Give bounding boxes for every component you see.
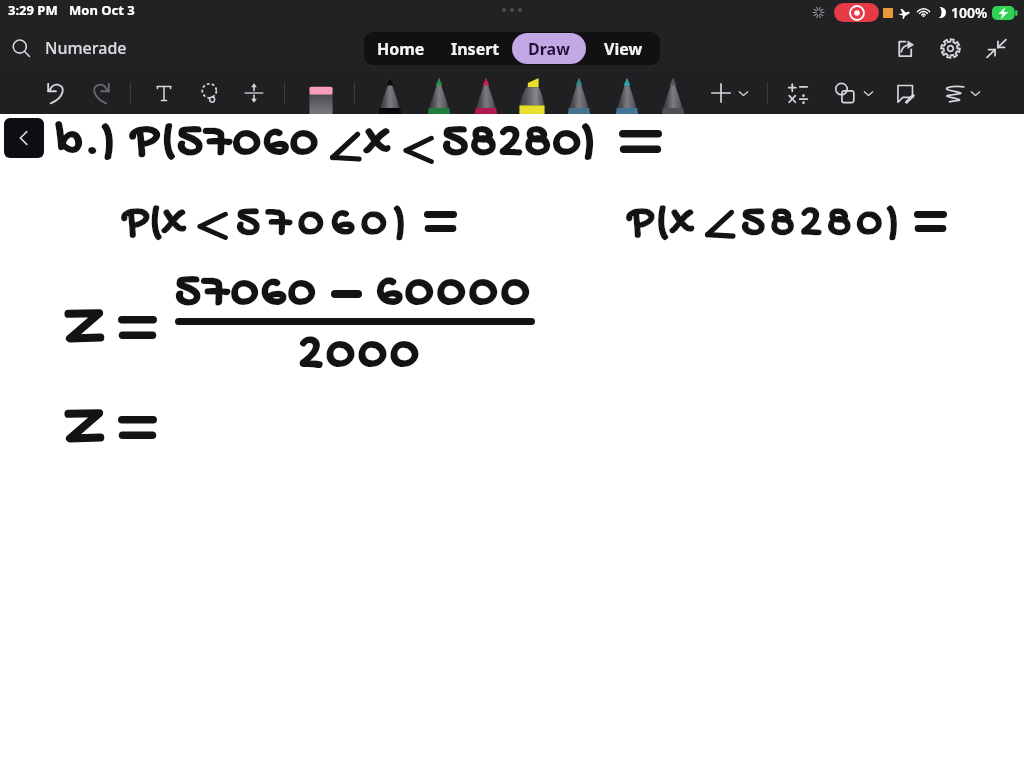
staticText: 100%	[951, 3, 988, 22]
button[interactable]: Pen	[607, 72, 647, 114]
staticText: 57060	[175, 265, 318, 323]
button[interactable]: Draw	[512, 33, 586, 64]
staticText: 58280)	[741, 198, 905, 252]
button[interactable]: More options	[857, 82, 879, 104]
button[interactable]: More options	[732, 82, 754, 104]
button[interactable]: Redo	[83, 76, 117, 110]
button[interactable]: Pen	[512, 72, 552, 114]
button[interactable]: Pen	[370, 72, 410, 114]
button[interactable]: Share	[886, 30, 922, 66]
button[interactable]: More options	[964, 82, 986, 104]
staticText: 2000	[298, 326, 422, 386]
staticText: 60000	[376, 264, 533, 324]
button[interactable]: Undo	[40, 76, 74, 110]
button[interactable]: Back	[4, 118, 44, 158]
button[interactable]: Insert	[438, 33, 512, 64]
staticText: 2000	[298, 326, 422, 386]
staticText: x	[364, 114, 391, 173]
button[interactable]: Shapes	[828, 76, 862, 110]
staticText: P(x	[123, 198, 187, 252]
staticText: View	[604, 38, 643, 60]
staticText: 58280)	[741, 198, 905, 252]
button[interactable]: Ink to shape	[937, 76, 971, 110]
button[interactable]: Pen	[419, 72, 459, 114]
button[interactable]: Note	[888, 76, 922, 110]
staticText: Insert	[451, 38, 500, 60]
button[interactable]: Numerade	[0, 33, 139, 63]
staticText: 57060)	[236, 198, 414, 252]
button[interactable]: Exit full screen	[978, 30, 1014, 66]
staticText: P(x	[628, 198, 696, 252]
staticText: Home	[377, 38, 425, 60]
button[interactable]: Settings	[932, 30, 968, 66]
staticText: 60000	[376, 264, 533, 324]
staticText: 57060	[175, 265, 318, 323]
button[interactable]: Add	[704, 76, 738, 110]
staticText: Mon Oct 3	[69, 1, 135, 19]
staticText: P(x	[628, 198, 696, 252]
button[interactable]: Pen	[466, 72, 506, 114]
button[interactable]: Pen	[301, 72, 341, 114]
staticText: 3:29 PM	[8, 1, 58, 19]
staticText: x	[364, 114, 391, 173]
staticText: P(x	[123, 198, 187, 252]
staticText: 57060)	[236, 198, 414, 252]
button[interactable]: View	[586, 33, 660, 64]
staticText: Numerade	[45, 37, 127, 59]
staticText: b.) P(57060	[56, 114, 321, 173]
button[interactable]: Lasso select	[193, 76, 227, 110]
staticText: b.) P(57060	[56, 114, 321, 173]
staticText: 58280)	[442, 114, 598, 173]
button[interactable]: Math	[781, 76, 815, 110]
button[interactable]: Text	[147, 76, 181, 110]
button[interactable]: Home	[364, 33, 438, 64]
button[interactable]: Pen	[559, 72, 599, 114]
button[interactable]: Insert space	[237, 76, 271, 110]
staticText: Draw	[528, 38, 570, 60]
staticText: 58280)	[442, 114, 598, 173]
button[interactable]: Pen	[653, 72, 693, 114]
